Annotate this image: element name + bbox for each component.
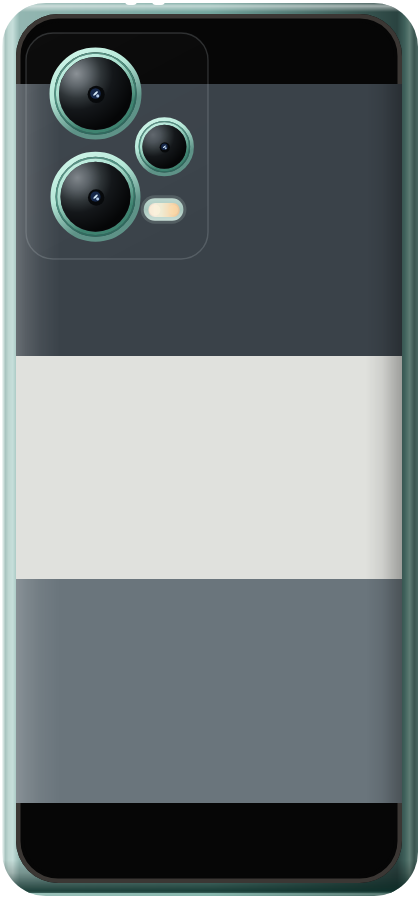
- button[interactable]: Phone case product photo: [0, 0, 419, 900]
